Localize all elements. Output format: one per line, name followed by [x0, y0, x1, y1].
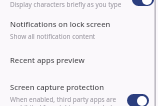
staticText: Display characters briefly as you type: [10, 0, 122, 9]
button[interactable]: Notifications on lock screen: [0, 19, 158, 41]
button[interactable]: Recent apps preview: [0, 50, 158, 70]
staticText: Show all notification content: [10, 32, 96, 41]
button[interactable]: Toggle screen capture protection: [127, 94, 149, 106]
button[interactable]: Display characters briefly as you type: [0, 0, 158, 14]
staticText: Screen capture protection: [10, 82, 105, 92]
staticText: Recent apps preview: [10, 55, 85, 65]
staticText: When enabled, third party apps are prohi…: [10, 95, 132, 106]
button[interactable]: Screen capture protection: [0, 82, 158, 106]
staticText: Notifications on lock screen: [10, 19, 111, 29]
button[interactable]: Toggle display characters briefly as you…: [132, 0, 154, 6]
